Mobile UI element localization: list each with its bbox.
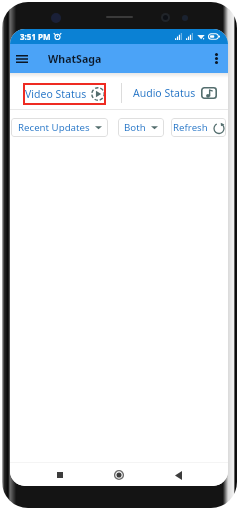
staticText: 3:51 PM xyxy=(20,31,51,42)
staticText: WhatSaga xyxy=(48,52,102,66)
button[interactable]: Video Status xyxy=(10,78,121,108)
button[interactable]: Refresh xyxy=(171,118,226,137)
staticText: Refresh xyxy=(173,121,208,134)
button[interactable]: More options xyxy=(204,44,228,73)
button[interactable]: Navigation menu xyxy=(10,44,33,73)
staticText: Video Status xyxy=(25,87,87,101)
staticText: Both xyxy=(124,121,146,134)
staticText: Recent Updates xyxy=(18,121,90,134)
staticText: Audio Status xyxy=(133,86,196,100)
button[interactable]: Recent Updates xyxy=(11,118,108,137)
button[interactable]: Home xyxy=(109,465,129,485)
button[interactable]: Audio Status xyxy=(122,78,228,108)
button[interactable]: Recent apps xyxy=(50,465,70,485)
button[interactable]: Both xyxy=(118,118,164,137)
button[interactable]: Back xyxy=(168,465,188,485)
